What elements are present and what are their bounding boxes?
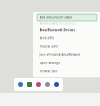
staticText: Show Bluetooth Devices [39,28,74,32]
staticText: Join a Personal Area Network [39,53,79,56]
button[interactable]: Allow a Device to Connect [33,21,100,26]
button[interactable]: Join a Personal Area Network [33,51,100,59]
staticText: Open Settings [39,61,59,65]
staticText: Allow a Device to Connect [39,22,75,25]
staticText: Add a Bluetooth Device [39,16,72,19]
staticText: Send a File [39,36,54,40]
button[interactable]: Send a File [33,34,100,42]
staticText: Receive a File [39,45,58,48]
staticText: Remove Icon [39,69,57,73]
button[interactable]: Show Bluetooth Devices [33,26,100,34]
button[interactable]: Add a Bluetooth Device [33,14,100,21]
button[interactable]: Open Settings [33,59,100,67]
button[interactable]: Remove Icon [33,67,100,75]
button[interactable]: Receive a File [33,42,100,51]
